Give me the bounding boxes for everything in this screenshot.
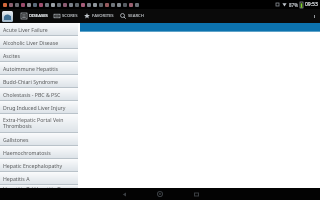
button[interactable]: Budd-Chiari Syndrome: [0, 75, 78, 87]
button[interactable]: DISEASES: [21, 9, 48, 23]
staticText: 87%: [289, 2, 298, 8]
button[interactable]: Acute Liver Failure: [0, 23, 78, 35]
staticText: Alcoholic Liver Disease: [3, 39, 59, 46]
button[interactable]: Haemochromatosis: [0, 146, 78, 158]
staticText: Drug Induced Liver Injury: [3, 104, 66, 111]
button[interactable]: Gallstones: [0, 133, 78, 145]
button[interactable]: App icon, up: [2, 11, 13, 22]
staticText: SEARCH: [128, 13, 144, 19]
button[interactable]: Cholestasis - PBC & PSC: [0, 88, 78, 100]
button[interactable]: Ascites: [0, 49, 78, 61]
staticText: 09:53: [305, 1, 318, 8]
staticText: DISEASES: [29, 13, 48, 19]
button[interactable]: More options: [310, 9, 319, 23]
button[interactable]: Drug Induced Liver Injury: [0, 101, 78, 113]
button[interactable]: Back: [117, 188, 131, 200]
button[interactable]: Alcoholic Liver Disease: [0, 36, 78, 48]
button[interactable]: Home: [153, 188, 167, 200]
staticText: Haemochromatosis: [3, 149, 51, 156]
button[interactable]: SCORES: [54, 9, 78, 23]
button[interactable]: Hepatic Encephalopathy: [0, 159, 78, 171]
staticText: Ascites: [3, 52, 20, 59]
button[interactable]: Recent apps: [189, 188, 203, 200]
staticText: Autoimmune Hepatitis: [3, 65, 59, 72]
staticText: SCORES: [62, 13, 78, 19]
staticText: Cholestasis - PBC & PSC: [3, 91, 61, 98]
button[interactable]: SEARCH: [120, 9, 144, 23]
button[interactable]: Hepatitis A: [0, 172, 78, 184]
staticText: FAVORITES: [92, 13, 114, 19]
staticText: Gallstones: [3, 136, 29, 143]
button[interactable]: FAVORITES: [84, 9, 114, 23]
staticText: Hepatic Encephalopathy: [3, 162, 63, 169]
staticText: Hepatitis A: [3, 175, 30, 182]
button[interactable]: Autoimmune Hepatitis: [0, 62, 78, 74]
button[interactable]: Hepatitis B / Hepatitis D: [0, 185, 78, 188]
staticText: Extra-Hepatic Portal Vein Thrombosis: [3, 116, 64, 130]
button[interactable]: Extra-Hepatic Portal Vein Thrombosis: [0, 114, 78, 132]
staticText: Hepatitis B / Hepatitis D: [3, 185, 62, 188]
staticText: Budd-Chiari Syndrome: [3, 78, 59, 85]
staticText: Acute Liver Failure: [3, 26, 48, 33]
